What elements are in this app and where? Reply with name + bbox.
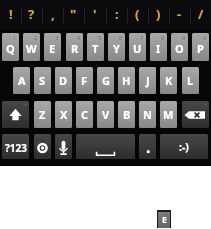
staticText: ! [9,5,13,23]
button[interactable]: ? [21,1,42,30]
button[interactable]: ( [127,1,148,30]
staticText: E [162,214,167,226]
button[interactable]: K [160,67,177,94]
button[interactable]: M [160,101,177,128]
button[interactable]: L [182,67,199,94]
staticText: J [146,73,150,88]
button[interactable]: :-) [160,134,208,159]
button[interactable]: - [169,1,190,30]
staticText: 5 [98,34,102,41]
button[interactable]: N [139,101,156,128]
button[interactable]: D [55,67,72,94]
button[interactable]: ' [84,1,105,30]
button[interactable]: Voice input [55,134,72,159]
staticText: 0 [203,34,207,41]
staticText: " [70,5,77,23]
staticText: 9 [182,34,186,41]
staticText: E [49,41,56,56]
staticText: S [39,73,46,88]
button[interactable]: H [118,67,135,94]
button[interactable]: ! [0,1,21,30]
staticText: D [59,73,68,88]
staticText: U [133,41,142,56]
staticText: : [115,5,119,23]
staticText: 2 [34,34,38,41]
staticText: 7 [140,34,144,41]
button[interactable]: G [97,67,114,94]
button[interactable]: Shift [2,101,29,128]
button[interactable]: Q [2,33,19,61]
staticText: R [71,41,79,56]
staticText: Y [113,41,120,56]
staticText: , [51,5,55,23]
staticText: 1 [13,34,17,41]
staticText: M [163,107,174,122]
staticText: C [81,107,89,122]
button[interactable]: ?123 [2,134,29,159]
staticText: ' [93,5,97,23]
staticText: ) [156,5,161,23]
button[interactable]: E [157,210,171,228]
button[interactable]: V [97,101,114,128]
button[interactable]: , [42,1,63,30]
button[interactable]: T [87,33,104,61]
button[interactable]: B [118,101,135,128]
staticText: K [165,73,173,88]
button[interactable]: W [23,33,40,61]
button[interactable]: P [192,33,209,61]
staticText: V [102,107,110,122]
staticText: 8 [161,34,165,41]
button[interactable]: C [76,101,93,128]
button[interactable]: Backspace [182,101,209,128]
button[interactable]: ) [148,1,169,30]
staticText: W [26,41,37,56]
staticText: 6 [119,34,123,41]
button[interactable]: O [171,33,188,61]
staticText: ? [28,5,35,23]
button[interactable]: Y [108,33,125,61]
staticText: G [102,73,110,88]
button[interactable]: Period [139,134,156,159]
button[interactable]: X [55,101,72,128]
button[interactable]: S [34,67,51,94]
button[interactable]: J [139,67,156,94]
button[interactable]: I [150,33,167,61]
staticText: I [156,41,161,56]
button[interactable]: E [44,33,61,61]
staticText: 4 [77,34,81,41]
staticText: N [143,107,152,122]
button[interactable]: Space [76,134,135,159]
staticText: - [177,5,182,23]
staticText: ( [135,5,140,23]
button[interactable]: F [76,67,93,94]
staticText: X [60,107,68,122]
staticText: T [92,41,99,56]
staticText: 3 [166,213,169,219]
staticText: / [198,5,204,23]
button[interactable]: Z [34,101,51,128]
staticText: 3 [55,34,59,41]
staticText: ?123 [5,141,27,155]
staticText: L [187,73,194,88]
button[interactable]: A [13,67,30,94]
staticText: Z [39,107,46,122]
button[interactable]: Settings [34,134,51,159]
button[interactable]: U [129,33,146,61]
button[interactable]: " [63,1,84,30]
staticText: H [122,73,131,88]
staticText: F [81,73,88,88]
staticText: :-) [179,140,189,154]
button[interactable]: : [106,1,127,30]
staticText: A [18,73,26,88]
button[interactable]: / [190,1,211,30]
staticText: P [197,41,204,56]
button[interactable]: R [66,33,83,61]
staticText: O [175,41,184,56]
staticText: Q [6,41,15,56]
staticText: B [123,107,131,122]
